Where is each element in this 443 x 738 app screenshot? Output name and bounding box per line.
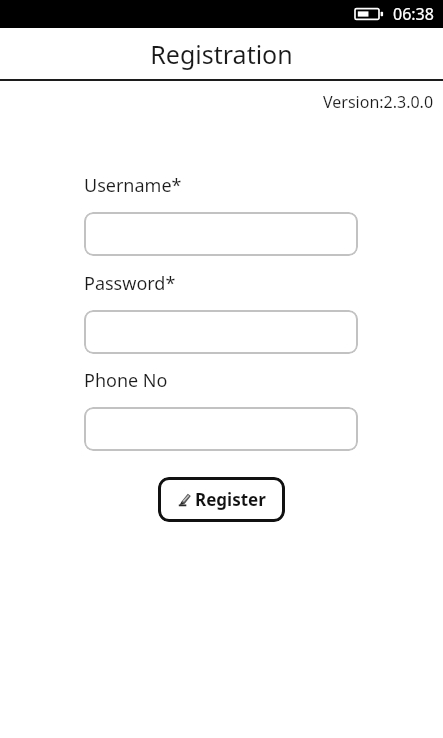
staticText: 06:38 xyxy=(393,3,434,25)
staticText: Password* xyxy=(84,271,176,296)
staticText: Version:2.3.0.0 xyxy=(323,91,434,113)
staticText: Registration xyxy=(150,37,293,71)
staticText: Phone No xyxy=(84,368,168,393)
button[interactable]: Phone No xyxy=(84,407,358,451)
button[interactable]: Username xyxy=(84,212,358,256)
staticText: Register xyxy=(195,488,266,511)
staticText: Username* xyxy=(84,173,182,198)
button[interactable]: Password xyxy=(84,310,358,354)
button[interactable]: Register xyxy=(158,477,285,522)
